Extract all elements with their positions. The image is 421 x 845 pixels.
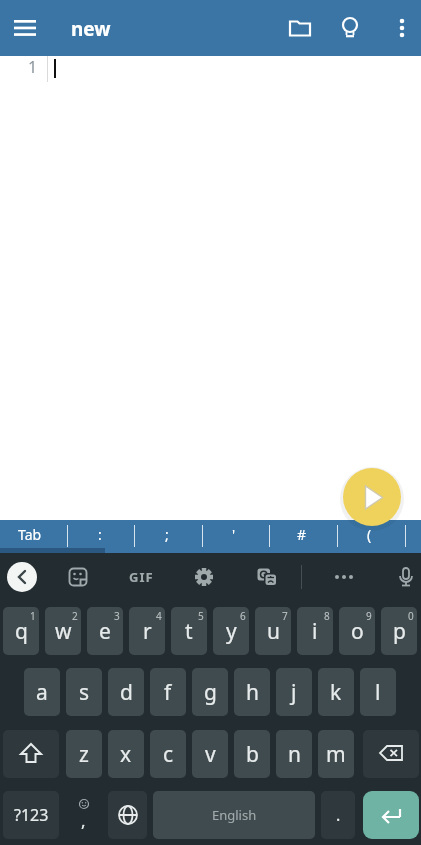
staticText: n [288, 740, 301, 769]
button[interactable]: n [276, 730, 312, 778]
staticText: h [246, 678, 259, 707]
staticText: s [79, 678, 90, 707]
button[interactable] [187, 560, 221, 594]
staticText: r [143, 617, 152, 646]
staticText: 3 [114, 609, 120, 623]
staticText: : [98, 525, 102, 544]
staticText: English [212, 806, 257, 824]
staticText: q [15, 617, 28, 646]
staticText: 5 [198, 609, 204, 623]
button[interactable]: g [192, 668, 228, 716]
staticText: f [164, 678, 172, 707]
staticText: j [291, 678, 297, 707]
staticText: ?123 [14, 804, 49, 826]
staticText: d [120, 678, 133, 707]
staticText: c [163, 740, 174, 769]
button[interactable]: b [234, 730, 270, 778]
button[interactable] [389, 560, 421, 594]
button[interactable]: ?123 [3, 791, 59, 839]
button[interactable]: a [24, 668, 60, 716]
staticText: 7 [282, 609, 288, 623]
button[interactable] [327, 560, 361, 594]
staticText: 9 [366, 609, 372, 623]
button[interactable]: s [66, 668, 102, 716]
button[interactable]: w [45, 607, 81, 655]
button[interactable]: t [171, 607, 207, 655]
button[interactable]: c [150, 730, 186, 778]
staticText: u [267, 617, 280, 646]
staticText: 6 [240, 609, 246, 623]
button[interactable]: e [87, 607, 123, 655]
button[interactable]: o [339, 607, 375, 655]
button[interactable]: h [234, 668, 270, 716]
button[interactable] [283, 11, 317, 45]
staticText: l [375, 678, 381, 707]
button[interactable] [61, 560, 95, 594]
staticText: 2 [72, 609, 78, 623]
staticText: z [79, 740, 89, 769]
button[interactable]: ' [208, 520, 260, 548]
button[interactable]: , [66, 791, 102, 839]
button[interactable] [363, 730, 419, 778]
button[interactable] [8, 11, 42, 45]
button[interactable]: i [297, 607, 333, 655]
button[interactable] [385, 11, 419, 45]
staticText: # [297, 525, 307, 544]
button[interactable]: x [108, 730, 144, 778]
button[interactable]: z [66, 730, 102, 778]
button[interactable]: k [318, 668, 354, 716]
button[interactable]: ( [343, 520, 395, 548]
staticText: b [246, 740, 259, 769]
button[interactable]: d [108, 668, 144, 716]
button[interactable] [343, 468, 401, 526]
staticText: 0 [408, 609, 414, 623]
button[interactable]: : [74, 520, 126, 548]
button[interactable]: GIF [122, 560, 160, 594]
staticText: 4 [156, 609, 162, 623]
button[interactable] [250, 560, 284, 594]
staticText: new [71, 16, 111, 42]
staticText: t [185, 617, 193, 646]
button[interactable]: . [321, 791, 355, 839]
staticText: m [326, 740, 346, 769]
button[interactable]: f [150, 668, 186, 716]
staticText: p [393, 617, 406, 646]
staticText: e [99, 617, 111, 646]
staticText: Tab [18, 525, 42, 544]
staticText: 8 [324, 609, 330, 623]
staticText: 1 [30, 609, 36, 623]
button[interactable]: v [192, 730, 228, 778]
button[interactable]: p [381, 607, 417, 655]
button[interactable]: j [276, 668, 312, 716]
button[interactable]: # [276, 520, 328, 548]
staticText: GIF [129, 568, 154, 586]
staticText: k [330, 678, 342, 707]
staticText: , [81, 809, 86, 832]
button[interactable]: y [213, 607, 249, 655]
button[interactable]: l [360, 668, 396, 716]
staticText: a [36, 678, 48, 707]
staticText: o [351, 617, 364, 646]
staticText: . [336, 804, 341, 826]
button[interactable] [363, 791, 419, 839]
staticText: w [55, 617, 72, 646]
button[interactable] [108, 791, 147, 839]
button[interactable]: Tab [4, 520, 56, 548]
button[interactable]: u [255, 607, 291, 655]
staticText: g [204, 678, 217, 707]
button[interactable] [3, 730, 59, 778]
staticText: ( [367, 525, 372, 544]
button[interactable] [5, 560, 39, 594]
button[interactable] [333, 11, 367, 45]
staticText: x [120, 740, 132, 769]
staticText: ' [232, 525, 236, 544]
staticText: i [312, 617, 318, 646]
button[interactable]: m [318, 730, 354, 778]
staticText: 1 [28, 56, 38, 78]
button[interactable]: q [3, 607, 39, 655]
staticText: v [205, 740, 216, 769]
button[interactable]: English [153, 791, 315, 839]
button[interactable]: ; [141, 520, 193, 548]
button[interactable]: r [129, 607, 165, 655]
staticText: y [226, 617, 237, 646]
